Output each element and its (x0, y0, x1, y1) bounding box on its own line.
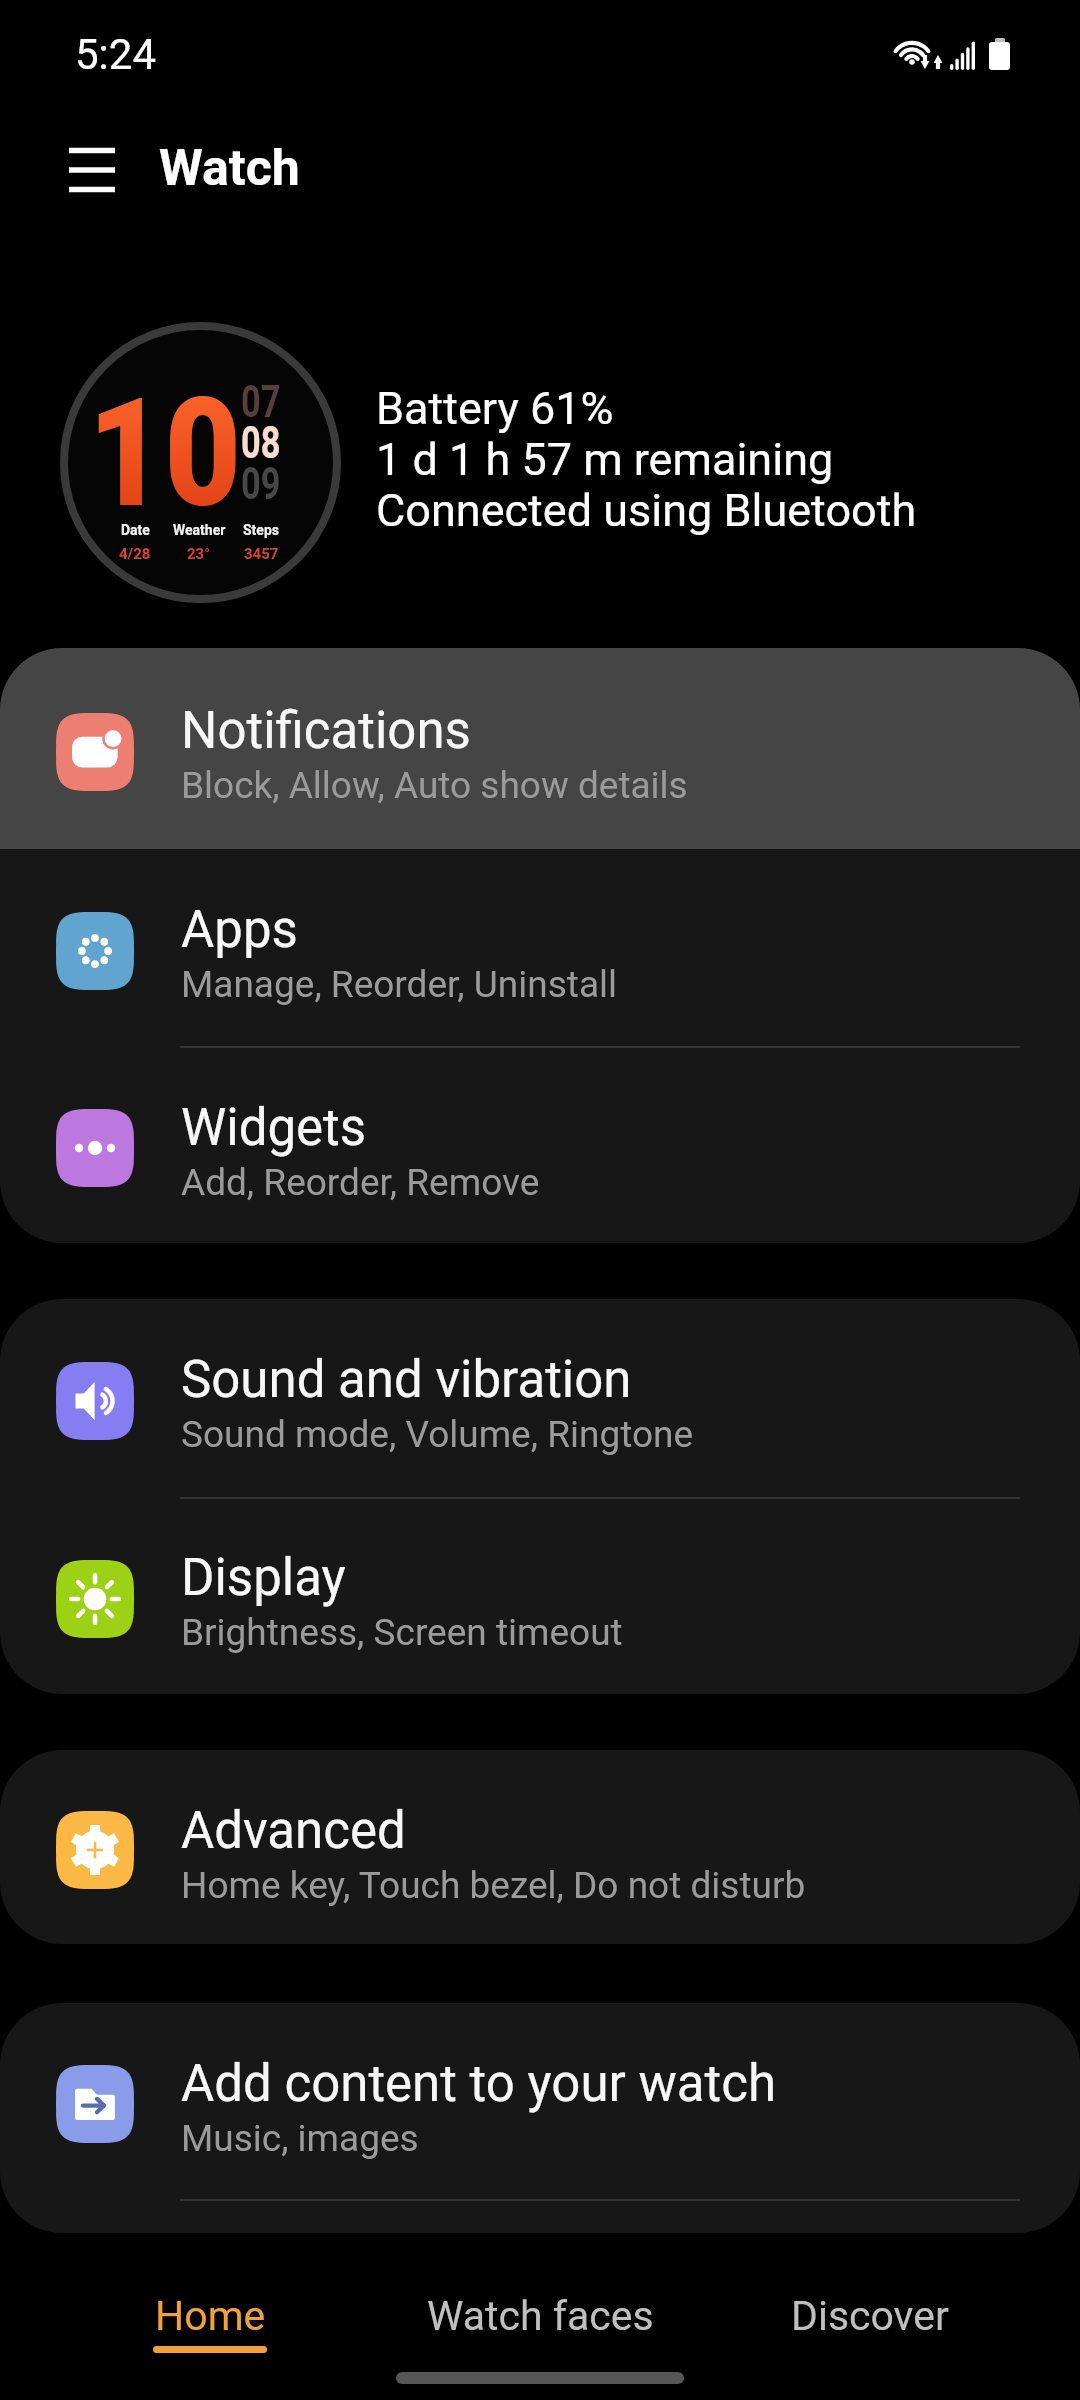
staticText: Music, images (181, 2117, 419, 2160)
staticText: 5:24 (75, 30, 156, 79)
button[interactable]: Add content to your watch (0, 2003, 1080, 2199)
staticText: Battery 61% 1 d 1 h 57 m remaining Conne… (376, 382, 917, 537)
staticText: 4/28 (119, 545, 151, 563)
staticText: Notifications (181, 701, 471, 761)
staticText: Sound mode, Volume, Ringtone (181, 1413, 694, 1456)
staticText: Advanced (181, 1801, 406, 1861)
staticText: 08 (241, 417, 281, 469)
button[interactable]: Watch faces (375, 2256, 705, 2366)
button[interactable]: Discover (705, 2256, 1035, 2366)
staticText: Manage, Reorder, Uninstall (181, 963, 617, 1006)
button[interactable]: Notifications (0, 648, 1080, 849)
staticText: Display (181, 1548, 346, 1608)
staticText: Brightness, Screen timeout (181, 1611, 623, 1654)
staticText: Apps (181, 900, 298, 960)
button[interactable]: Widgets (0, 1047, 1080, 1243)
button[interactable]: Open navigation drawer (48, 126, 136, 214)
button[interactable]: Advanced (0, 1750, 1080, 1944)
staticText: Block, Allow, Auto show details (181, 764, 688, 807)
staticText: Widgets (181, 1098, 367, 1158)
staticText: 23° (187, 545, 211, 563)
staticText: 07 (241, 376, 281, 428)
staticText: Add, Reorder, Remove (181, 1161, 540, 1204)
staticText: Weather (173, 522, 226, 538)
button[interactable]: Sound and vibration (0, 1299, 1080, 1497)
staticText: Discover (791, 2292, 949, 2340)
staticText: Watch (159, 139, 300, 198)
staticText: Home (155, 2292, 266, 2340)
button[interactable]: Display (0, 1497, 1080, 1694)
button[interactable]: Apps (0, 849, 1080, 1047)
staticText: 09 (241, 458, 281, 510)
staticText: 3457 (244, 545, 279, 563)
button[interactable]: Home (45, 2256, 375, 2366)
staticText: Sound and vibration (181, 1350, 632, 1410)
staticText: Steps (243, 522, 279, 538)
staticText: Home key, Touch bezel, Do not disturb (181, 1864, 806, 1907)
staticText: Date (121, 522, 150, 538)
staticText: Add content to your watch (181, 2054, 776, 2114)
staticText: 10 (88, 366, 241, 542)
staticText: Watch faces (427, 2292, 654, 2340)
